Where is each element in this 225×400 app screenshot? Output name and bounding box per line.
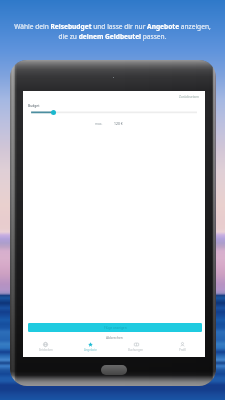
staticText: Entdecken — [39, 348, 53, 352]
button[interactable]: Zurücksetzen — [173, 94, 200, 100]
button[interactable] — [23, 107, 205, 117]
staticText: Angebote — [84, 348, 97, 352]
staticText: Budget — [28, 103, 40, 107]
staticText: Buchungen — [128, 348, 144, 352]
staticText: Flüge anzeigen — [104, 326, 127, 330]
button[interactable]: Profil — [159, 341, 205, 357]
staticText: 120 € — [114, 121, 123, 126]
staticText: Zurücksetzen — [179, 95, 200, 99]
button[interactable]: Abbrechen — [100, 334, 129, 340]
button[interactable]: Buchungen — [113, 341, 159, 357]
button[interactable]: Entdecken — [23, 341, 68, 357]
staticText: Abbrechen — [106, 335, 123, 339]
other: Home — [101, 365, 127, 375]
button[interactable]: Flüge anzeigen — [28, 323, 202, 332]
staticText: max. — [95, 122, 103, 126]
staticText: Wähle dein Reisebudget und lasse dir nur… — [14, 22, 211, 41]
staticText: Profil — [179, 348, 186, 352]
button[interactable]: Angebote — [68, 341, 113, 357]
